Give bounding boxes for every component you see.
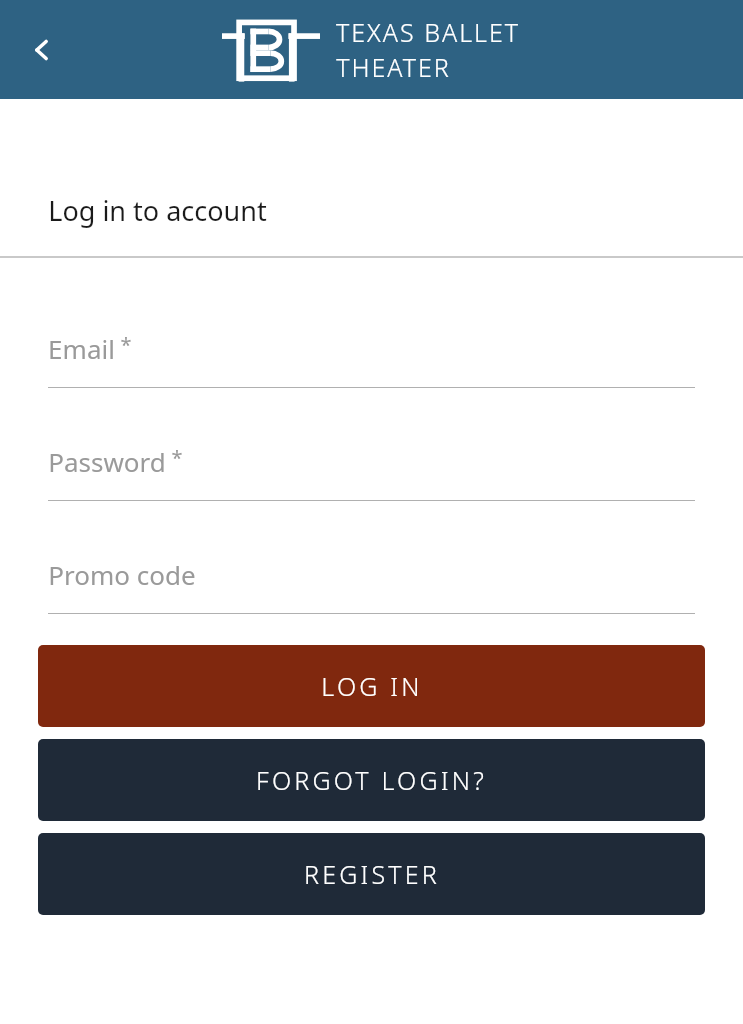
staticText: Email (48, 331, 115, 366)
staticText: THEATER (336, 50, 451, 84)
button[interactable]: FORGOT LOGIN? (38, 739, 705, 821)
button[interactable]: Password (48, 444, 695, 501)
staticText: * (171, 444, 183, 471)
staticText: REGISTER (304, 857, 440, 891)
staticText: TEXAS BALLET (336, 15, 520, 49)
staticText: LOG IN (321, 669, 423, 703)
button[interactable]: Back (14, 22, 70, 78)
staticText: Log in to account (48, 192, 267, 229)
button[interactable]: REGISTER (38, 833, 705, 915)
button[interactable]: Email (48, 331, 695, 388)
button[interactable]: LOG IN (38, 645, 705, 727)
button[interactable]: Promo code (48, 557, 695, 614)
staticText: Password (48, 444, 166, 479)
staticText: * (120, 331, 132, 358)
staticText: Promo code (48, 557, 196, 592)
staticText: FORGOT LOGIN? (256, 763, 487, 797)
